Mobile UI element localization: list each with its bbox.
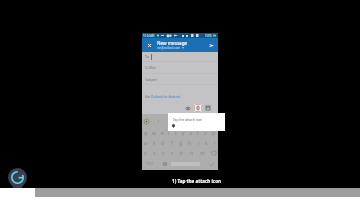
button[interactable]: Insert photo <box>184 104 192 112</box>
staticText: 1) Tap the attach icon <box>172 178 222 184</box>
staticText: 10:34 AM <box>143 34 155 38</box>
staticText: p <box>212 130 216 137</box>
staticText: z <box>144 150 147 157</box>
staticText: t <box>175 130 177 137</box>
staticText: y <box>182 130 185 137</box>
staticText: Outlook for Android <box>151 95 181 99</box>
staticText: f <box>171 140 173 147</box>
staticText: b <box>180 150 184 157</box>
staticText: Get <box>145 95 151 99</box>
staticText: d <box>161 140 165 147</box>
staticText: e <box>161 130 164 137</box>
button[interactable]: Calendar <box>204 104 212 112</box>
staticText: o <box>204 130 208 137</box>
staticText: 1 <box>157 119 160 124</box>
staticText: New message <box>157 40 188 46</box>
staticText: ?123 <box>146 162 153 166</box>
button[interactable]: Close <box>144 40 154 50</box>
staticText: u <box>189 130 193 137</box>
button[interactable]: Attach <box>194 104 202 112</box>
staticText: h <box>188 140 192 147</box>
staticText: Tap the attach icon <box>173 117 203 121</box>
staticText: Cc/Bcc <box>145 65 157 70</box>
staticText: c <box>162 150 165 157</box>
staticText: Subject <box>145 77 158 82</box>
button[interactable]: Send <box>206 40 216 50</box>
staticText: x <box>153 150 156 157</box>
staticText: k <box>205 140 208 147</box>
staticText: v <box>171 150 174 157</box>
staticText: a <box>144 140 147 147</box>
staticText: m <box>200 150 205 157</box>
staticText: r <box>168 130 171 137</box>
staticText: j <box>198 140 200 147</box>
staticText: s <box>153 140 156 147</box>
staticText: i <box>197 130 199 137</box>
staticText: n <box>190 150 194 157</box>
staticText: , <box>157 162 159 167</box>
staticText: q <box>144 130 148 137</box>
staticText: g <box>179 140 183 147</box>
staticText: 100% <box>205 34 212 38</box>
staticText: To <box>145 54 149 59</box>
staticText: me@outlook.com <box>157 46 181 50</box>
staticText: w <box>152 130 156 137</box>
staticText: l <box>214 140 216 147</box>
